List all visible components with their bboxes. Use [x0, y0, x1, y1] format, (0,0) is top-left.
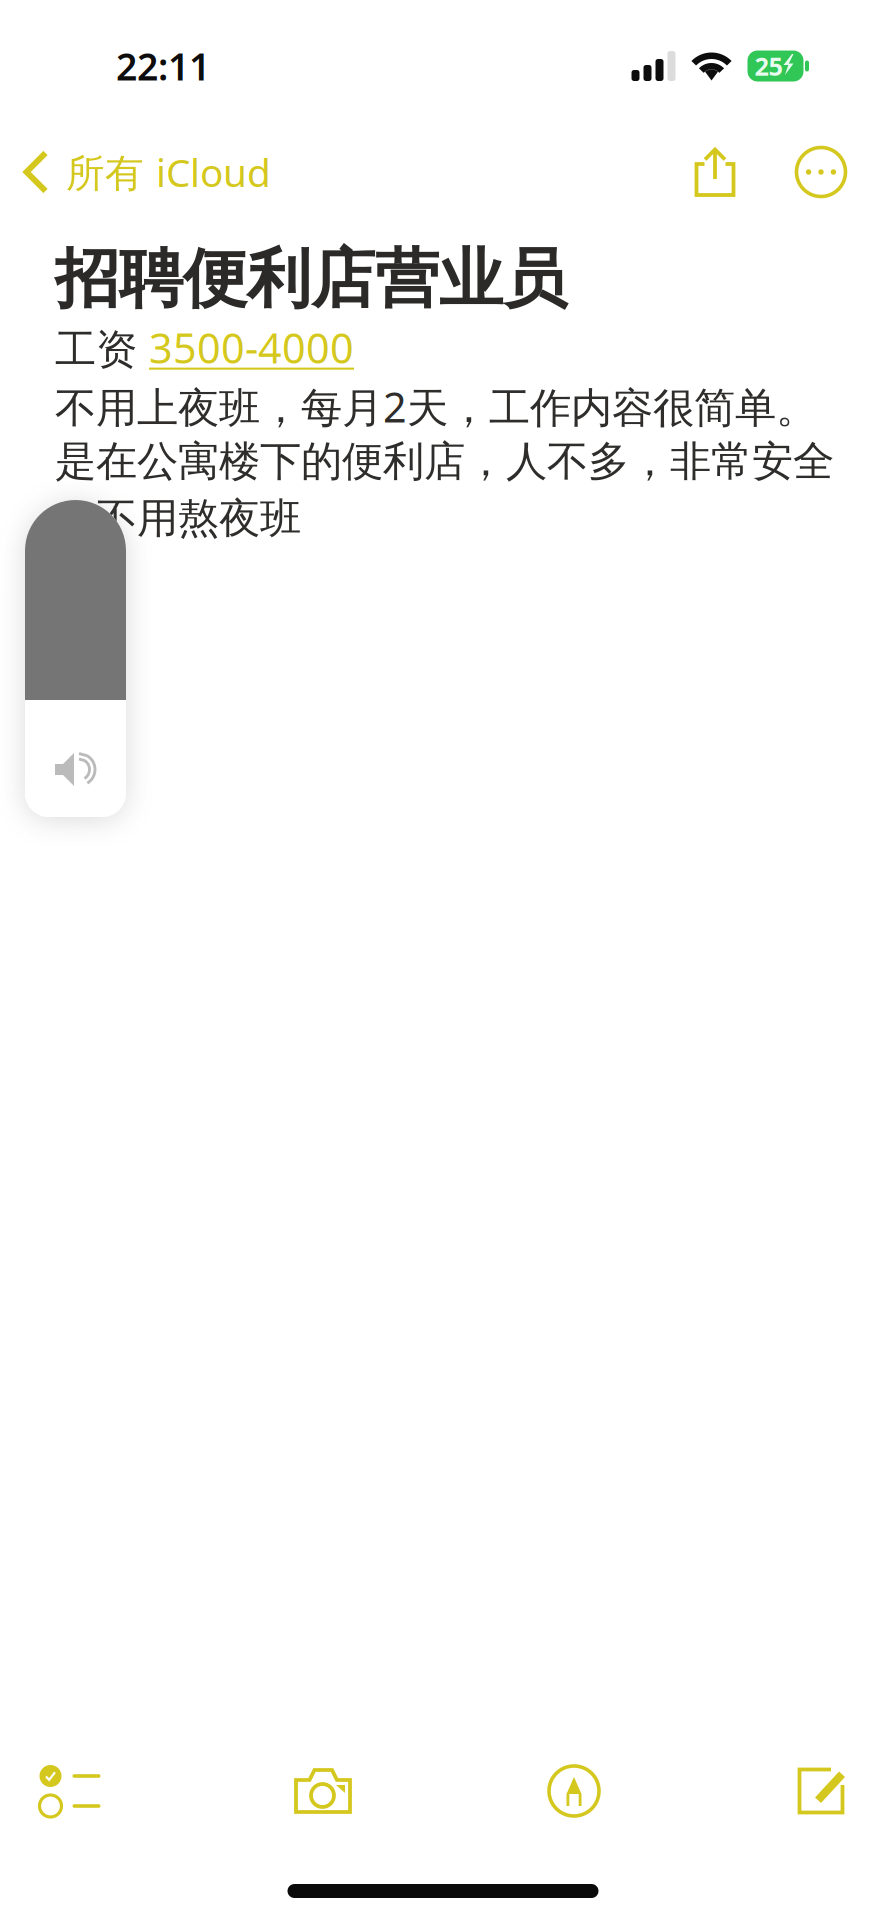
staticText: 不用上夜班，每月2天，工作内容很简单。 — [55, 379, 817, 434]
button[interactable]: 所有 iCloud — [0, 142, 289, 202]
button[interactable]: More — [782, 142, 860, 202]
staticText: 25 — [754, 49, 782, 83]
staticText: 工资 — [55, 324, 149, 375]
button[interactable]: New Note — [766, 1746, 876, 1836]
button[interactable]: Checklist — [15, 1746, 125, 1836]
button[interactable]: Markup — [519, 1746, 629, 1836]
staticText: 3500-4000 — [149, 320, 354, 375]
staticText: 是在公寓楼下的便利店，人不多，非常安全 — [55, 436, 834, 487]
button[interactable]: Camera — [268, 1746, 378, 1836]
staticText: 22:11 — [116, 41, 210, 91]
staticText: ，不用熬夜班 — [55, 493, 301, 544]
button[interactable]: Share — [676, 142, 754, 202]
staticText: 招聘便利店营业员 — [55, 240, 567, 319]
staticText: 所有 iCloud — [66, 146, 271, 198]
